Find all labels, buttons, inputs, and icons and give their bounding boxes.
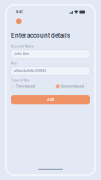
staticText: Key — [11, 62, 17, 65]
staticText: Enter account details — [11, 32, 70, 39]
button[interactable]: Counter-based — [56, 84, 84, 88]
button[interactable]: John Doe — [11, 50, 90, 58]
staticText: Counter-based — [61, 84, 84, 88]
staticText: af4ae3a4e6c25f943 — [14, 69, 46, 73]
button[interactable]: Add — [11, 95, 90, 104]
staticText: 9:41 — [16, 10, 22, 14]
button[interactable]: Time-based — [11, 84, 35, 88]
staticText: Time-based — [16, 84, 35, 88]
staticText: Add — [47, 97, 54, 102]
button[interactable]: af4ae3a4e6c25f943 — [11, 67, 90, 75]
staticText: Account Name — [11, 45, 34, 48]
staticText: Type of Key — [11, 79, 30, 82]
staticText: John Doe — [14, 52, 29, 56]
